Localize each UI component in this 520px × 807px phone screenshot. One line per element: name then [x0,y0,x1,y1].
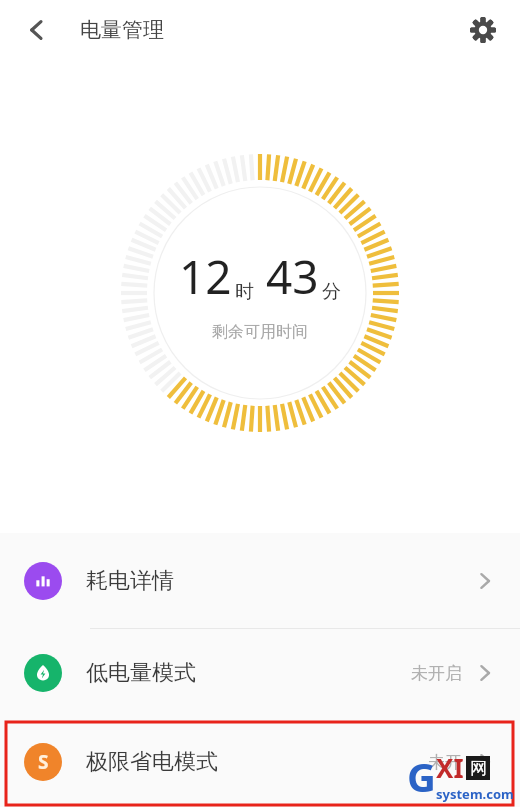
staticText: 电量管理 [80,17,164,43]
button[interactable]: 低电量模式 [0,629,520,717]
staticText: 分 [322,280,341,304]
staticText: 剩余可用时间 [212,322,308,342]
staticText: G [407,749,436,803]
button[interactable]: Back [14,7,60,53]
staticText: 网 [470,758,487,779]
staticText: 耗电详情 [86,567,174,595]
staticText: system.com [436,785,514,803]
staticText: 12 [179,245,232,308]
button[interactable]: 耗电详情 [0,533,520,628]
staticText: 低电量模式 [86,659,196,687]
staticText: 极限省电模式 [86,748,218,776]
staticText: 43 [266,245,319,308]
button[interactable]: Settings [460,7,506,53]
button[interactable]: S [0,717,520,807]
staticText: 时 [235,280,254,304]
staticText: XI [436,750,464,785]
staticText: 未开 [428,752,462,773]
staticText: 未开启 [411,663,462,684]
staticText: S [38,749,49,775]
